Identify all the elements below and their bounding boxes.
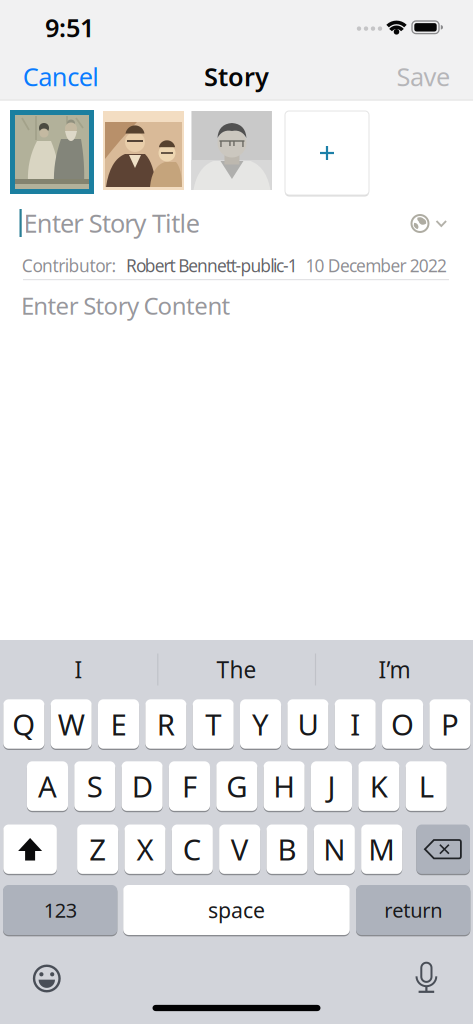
button[interactable]: I	[335, 699, 376, 749]
button[interactable]: X	[124, 824, 165, 874]
button[interactable]: Emoji	[33, 964, 61, 992]
button[interactable]: Delete	[416, 824, 470, 874]
staticText: E	[110, 704, 126, 743]
button[interactable]: Add Photo	[285, 111, 369, 195]
button[interactable]: K	[358, 761, 399, 811]
staticText: return	[384, 897, 442, 923]
staticText: C	[183, 830, 202, 869]
staticText: N	[323, 830, 345, 869]
staticText: space	[208, 896, 265, 924]
button[interactable]: Photo 3	[191, 111, 272, 190]
staticText: 10 December 2022	[305, 254, 447, 277]
button[interactable]: V	[219, 824, 260, 874]
button[interactable]: Dictate	[413, 962, 439, 993]
staticText: 123	[44, 897, 77, 923]
staticText: P	[441, 704, 459, 743]
staticText: F	[182, 767, 197, 806]
staticText: V	[231, 830, 249, 869]
staticText: J	[327, 767, 335, 806]
button[interactable]: R	[145, 699, 186, 749]
button[interactable]: return	[356, 885, 470, 935]
button[interactable]: Photo 1, selected	[10, 110, 94, 194]
staticText: I’m	[378, 654, 410, 684]
staticText: X	[136, 830, 153, 869]
button[interactable]: F	[169, 761, 210, 811]
button[interactable]: H	[264, 761, 305, 811]
staticText: K	[370, 767, 388, 806]
staticText: R	[157, 704, 175, 743]
button[interactable]: Photo 2	[103, 111, 184, 190]
button[interactable]: Y	[240, 699, 281, 749]
staticText: W	[58, 704, 85, 743]
button[interactable]: W	[51, 699, 92, 749]
button[interactable]: T	[193, 699, 234, 749]
staticText: M	[368, 830, 395, 869]
button[interactable]: J	[311, 761, 352, 811]
staticText: The	[216, 654, 256, 684]
button[interactable]: L	[406, 761, 447, 811]
staticText: I	[350, 704, 360, 743]
staticText: Enter Story Title	[23, 206, 200, 240]
button[interactable]: N	[314, 824, 355, 874]
button[interactable]: Q	[3, 699, 44, 749]
button[interactable]: Z	[77, 824, 118, 874]
button[interactable]: 123	[3, 885, 117, 935]
staticText: B	[277, 830, 296, 869]
button[interactable]: Save	[330, 59, 450, 93]
button[interactable]: U	[287, 699, 328, 749]
staticText: Z	[89, 830, 106, 869]
staticText: U	[297, 704, 318, 743]
button[interactable]: C	[172, 824, 213, 874]
button[interactable]: G	[216, 761, 257, 811]
staticText: Y	[252, 704, 269, 743]
button[interactable]: I’m	[334, 649, 454, 689]
staticText: 9:51	[45, 11, 94, 44]
staticText: G	[226, 767, 247, 806]
staticText: L	[419, 767, 434, 806]
button[interactable]: E	[98, 699, 139, 749]
button[interactable]: S	[74, 761, 115, 811]
button[interactable]: I	[18, 649, 138, 689]
button[interactable]: space	[123, 885, 350, 935]
button[interactable]: O	[382, 699, 423, 749]
staticText: Cancel	[23, 60, 99, 93]
staticText: H	[273, 767, 295, 806]
staticText: Enter Story Content	[21, 290, 231, 321]
button[interactable]: D	[122, 761, 163, 811]
staticText: Story	[204, 60, 269, 93]
button[interactable]: Story visibility	[410, 214, 447, 233]
staticText: S	[87, 767, 103, 806]
staticText: Save	[396, 60, 450, 93]
button[interactable]: The	[176, 649, 296, 689]
button[interactable]: M	[361, 824, 402, 874]
staticText: A	[38, 767, 57, 806]
button[interactable]: A	[27, 761, 68, 811]
button[interactable]: P	[429, 699, 470, 749]
staticText: T	[205, 704, 221, 743]
staticText: O	[391, 704, 414, 743]
button[interactable]: B	[266, 824, 308, 874]
staticText: Robert Bennett-public-1	[126, 254, 298, 277]
button[interactable]: Shift	[3, 824, 57, 874]
staticText: D	[132, 767, 153, 806]
staticText: Contributor:	[22, 254, 116, 277]
staticText: Q	[12, 704, 35, 743]
button[interactable]: Cancel	[23, 59, 143, 93]
staticText: I	[74, 654, 82, 684]
